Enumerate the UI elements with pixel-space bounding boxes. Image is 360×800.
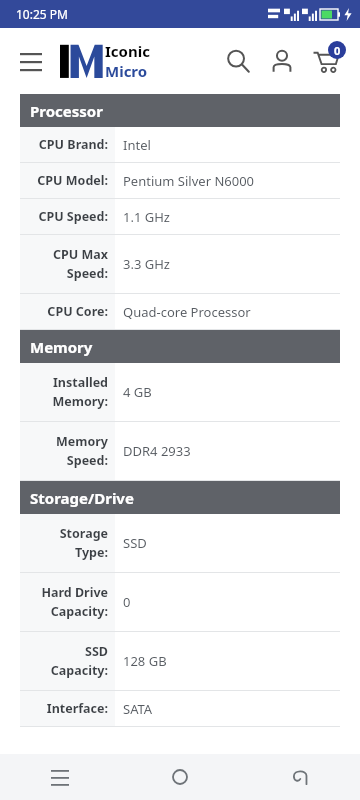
staticText: Pentium Silver N6000: [123, 172, 255, 190]
button[interactable]: CPU Brand:: [20, 127, 340, 162]
button[interactable]: Search: [220, 43, 256, 79]
staticText: Storage/Drive: [30, 488, 134, 508]
button[interactable]: Account: [264, 43, 300, 79]
staticText: 128 GB: [123, 652, 167, 670]
button[interactable]: Interface:: [20, 691, 340, 726]
staticText: 10:25 PM: [16, 6, 68, 22]
button[interactable]: CPU Speed:: [20, 199, 340, 234]
button[interactable]: Memory Speed:: [20, 422, 340, 480]
staticText: 1.1 GHz: [123, 208, 170, 226]
staticText: Interface:: [27, 700, 108, 717]
staticText: Processor: [30, 101, 103, 121]
button[interactable]: CPU Max Speed:: [20, 235, 340, 293]
staticText: Iconic: [105, 41, 150, 61]
staticText: 0: [123, 593, 131, 611]
staticText: SSD Capacity:: [27, 643, 108, 679]
staticText: SATA: [123, 700, 153, 718]
button[interactable]: SSD Capacity:: [20, 632, 340, 690]
staticText: SSD: [123, 534, 147, 552]
staticText: CPU Speed:: [27, 208, 108, 225]
staticText: CPU Brand:: [27, 136, 108, 153]
button[interactable]: Storage Type:: [20, 514, 340, 572]
button[interactable]: Home: [120, 754, 240, 800]
button[interactable]: Storage/Drive: [20, 481, 340, 514]
button[interactable]: Memory: [20, 330, 340, 363]
staticText: CPU Model:: [27, 172, 108, 189]
staticText: Installed Memory:: [27, 374, 108, 410]
staticText: Intel: [123, 136, 151, 154]
staticText: 0: [334, 43, 341, 58]
staticText: CPU Max Speed:: [27, 246, 108, 282]
button[interactable]: Menu: [14, 44, 48, 78]
button[interactable]: Installed Memory:: [20, 363, 340, 421]
button[interactable]: Recents: [0, 754, 120, 800]
button[interactable]: CPU Model:: [20, 163, 340, 198]
staticText: 3.3 GHz: [123, 255, 170, 273]
staticText: Storage Type:: [27, 525, 108, 561]
staticText: Memory: [30, 337, 93, 357]
button[interactable]: Cart, 0 items: [306, 41, 346, 81]
button[interactable]: CPU Core:: [20, 294, 340, 329]
staticText: Micro: [105, 61, 148, 81]
button[interactable]: Iconic: [60, 41, 150, 81]
staticText: Memory Speed:: [27, 433, 108, 469]
button[interactable]: Back: [240, 754, 360, 800]
staticText: 4 GB: [123, 383, 152, 401]
button[interactable]: Hard Drive Capacity:: [20, 573, 340, 631]
staticText: DDR4 2933: [123, 442, 191, 460]
staticText: Quad-core Processor: [123, 303, 251, 321]
button[interactable]: Processor: [20, 94, 340, 127]
staticText: Hard Drive Capacity:: [27, 584, 108, 620]
staticText: CPU Core:: [27, 303, 108, 320]
